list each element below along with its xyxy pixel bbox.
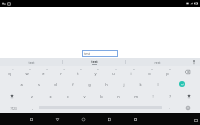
button[interactable]: Emoji (176, 102, 199, 113)
button[interactable]: f (64, 78, 81, 90)
button[interactable]: d (47, 78, 64, 90)
staticText: r (60, 71, 62, 76)
staticText: e (42, 71, 45, 76)
staticText: . (169, 105, 170, 110)
staticText: g (88, 82, 91, 87)
button[interactable]: Back (53, 115, 62, 124)
staticText: 8 (133, 67, 135, 70)
button[interactable]: 5 (69, 66, 86, 78)
button[interactable]: ?123 (1, 102, 25, 113)
staticText: 9 (151, 67, 153, 70)
button[interactable]: c (59, 90, 76, 102)
button[interactable]: a (12, 78, 30, 90)
button[interactable]: 2 (18, 66, 35, 78)
button[interactable]: 7 (104, 66, 122, 78)
button[interactable]: 3 (35, 66, 52, 78)
button[interactable]: m (127, 90, 144, 102)
staticText: 3 (46, 67, 48, 70)
button[interactable]: h (98, 78, 115, 90)
staticText: h (105, 82, 108, 87)
staticText: test (91, 59, 98, 64)
button[interactable]: s (30, 78, 47, 90)
staticText: text (28, 60, 35, 65)
staticText: rest (154, 60, 161, 65)
button[interactable]: 1 (1, 66, 18, 78)
button[interactable]: ? (161, 90, 178, 102)
button[interactable]: rest (126, 58, 188, 66)
staticText: o (148, 71, 151, 76)
staticText: u (112, 71, 115, 76)
button[interactable]: z (23, 90, 41, 102)
button[interactable]: 0 (158, 66, 176, 78)
staticText: i (130, 71, 132, 76)
button[interactable]: l (149, 78, 166, 90)
staticText: 4 (63, 67, 65, 70)
button[interactable]: Voice input (188, 58, 200, 66)
staticText: , (32, 105, 33, 110)
button[interactable]: n (110, 90, 127, 102)
staticText: n (117, 94, 120, 99)
button[interactable]: 8 (122, 66, 140, 78)
staticText: d (54, 82, 57, 87)
button[interactable]: test (82, 50, 118, 57)
button[interactable]: Space (39, 105, 162, 110)
staticText: b (100, 94, 103, 99)
staticText: x (49, 94, 52, 99)
staticText: 0 (169, 67, 171, 70)
button[interactable]: Menu (131, 115, 140, 124)
staticText: 5 (80, 67, 82, 70)
staticText: p (166, 71, 169, 76)
staticText: ?123 (10, 107, 17, 111)
staticText: j (123, 82, 125, 87)
staticText: 7 (115, 67, 117, 70)
button[interactable]: text (0, 58, 62, 66)
button[interactable]: Backspace (176, 66, 199, 78)
button[interactable]: 6 (86, 66, 104, 78)
button[interactable]: Enter (169, 78, 195, 90)
staticText: 1 (12, 67, 14, 70)
button[interactable]: Shift (178, 90, 199, 102)
staticText: 6 (97, 67, 99, 70)
staticText: v (83, 94, 86, 99)
staticText: l (157, 82, 159, 87)
staticText: 2 (29, 67, 31, 70)
staticText: q (8, 71, 11, 76)
button[interactable]: Shift (1, 90, 23, 102)
staticText: ! (152, 94, 154, 99)
button[interactable]: Hide keyboard (27, 115, 36, 124)
staticText: ? (169, 94, 171, 99)
staticText: y (94, 71, 97, 76)
staticText: m (134, 94, 138, 99)
button[interactable]: Recents (105, 115, 114, 124)
staticText: test (84, 52, 90, 56)
staticText: f (72, 82, 74, 87)
button[interactable]: 9 (140, 66, 158, 78)
staticText: a (20, 82, 23, 87)
staticText: t (77, 71, 79, 76)
button[interactable]: k (132, 78, 149, 90)
button[interactable]: v (76, 90, 93, 102)
button[interactable]: j (115, 78, 132, 90)
staticText: z (31, 94, 33, 99)
staticText: s (38, 82, 40, 87)
staticText: k (139, 82, 142, 87)
button[interactable]: Home (79, 115, 88, 124)
button[interactable]: test (63, 58, 125, 66)
button[interactable]: b (93, 90, 110, 102)
button[interactable]: ! (144, 90, 161, 102)
staticText: c (67, 94, 69, 99)
staticText: w (25, 71, 29, 76)
button[interactable]: Screenshot (193, 117, 199, 123)
button[interactable]: g (81, 78, 98, 90)
button[interactable]: 4 (52, 66, 69, 78)
button[interactable]: x (41, 90, 59, 102)
